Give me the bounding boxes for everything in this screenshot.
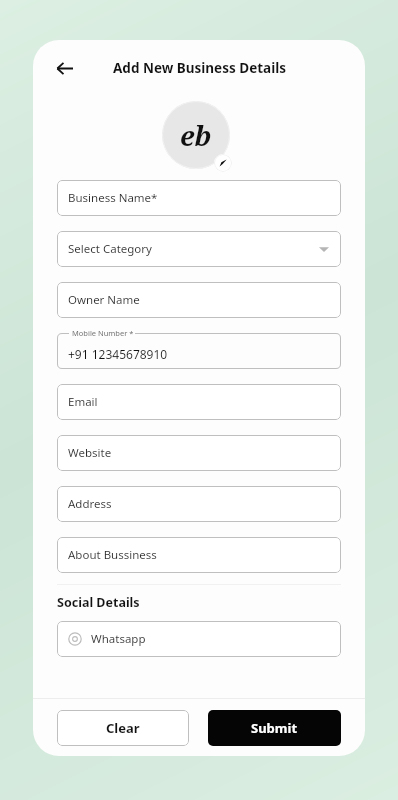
button[interactable]: Address xyxy=(57,486,341,522)
button[interactable]: Whatsapp xyxy=(57,621,341,657)
button[interactable]: Back xyxy=(45,49,83,87)
button[interactable]: Website xyxy=(57,435,341,471)
button[interactable]: Email xyxy=(57,384,341,420)
button[interactable]: Submit xyxy=(208,710,341,746)
staticText: Clear xyxy=(106,719,140,737)
button[interactable]: Mobile Number * xyxy=(57,333,341,369)
staticText: Select Category xyxy=(68,241,318,257)
button[interactable]: Business Name* xyxy=(57,180,341,216)
staticText: Address xyxy=(68,496,330,512)
button[interactable]: Edit logo xyxy=(214,154,232,172)
staticText: Email xyxy=(68,394,330,410)
staticText: About Bussiness xyxy=(68,547,330,563)
button[interactable]: About Bussiness xyxy=(57,537,341,573)
staticText: Website xyxy=(68,445,330,461)
staticText: +91 12345678910 xyxy=(68,346,168,362)
button[interactable]: Owner Name xyxy=(57,282,341,318)
button[interactable]: Clear xyxy=(57,710,189,746)
staticText: Whatsapp xyxy=(91,631,330,647)
button[interactable]: Business logo xyxy=(162,101,230,169)
staticText: Mobile Number * xyxy=(72,328,134,338)
staticText: Owner Name xyxy=(68,292,330,308)
staticText: Business Name* xyxy=(68,190,330,206)
staticText: Add New Business Details xyxy=(113,59,286,77)
staticText: Submit xyxy=(251,719,298,737)
button[interactable]: Select Category xyxy=(57,231,341,267)
staticText: eb xyxy=(180,117,212,154)
staticText: Social Details xyxy=(57,594,140,611)
